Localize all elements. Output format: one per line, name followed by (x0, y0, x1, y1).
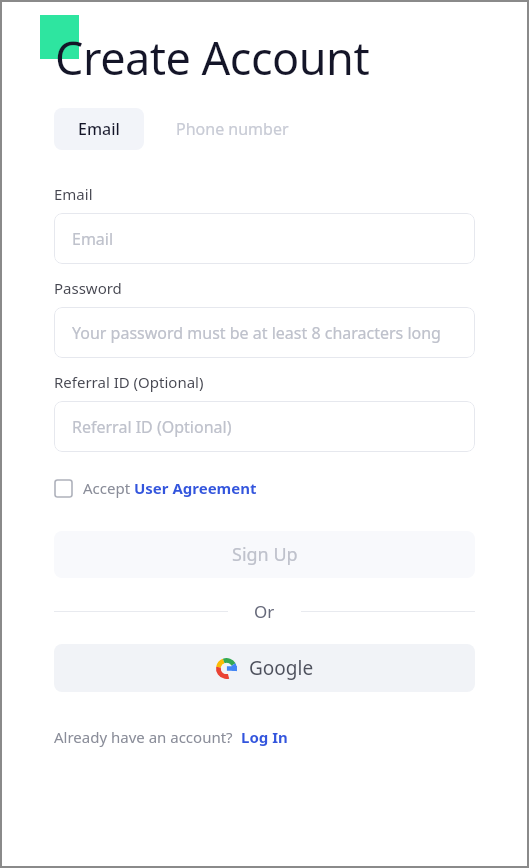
staticText: Referral ID (Optional) (54, 372, 204, 392)
button[interactable]: Log In (233, 724, 296, 750)
staticText: Google (249, 655, 314, 681)
staticText: Password (54, 278, 122, 298)
staticText: Accept (83, 478, 134, 498)
staticText: Your password must be at least 8 charact… (72, 322, 441, 344)
other: Google (216, 658, 237, 679)
staticText: Referral ID (Optional) (72, 416, 232, 438)
button[interactable]: Email (54, 213, 475, 264)
staticText: Already have an account? (54, 727, 233, 747)
staticText: Create Account (55, 27, 370, 88)
button[interactable]: Referral ID (Optional) (54, 401, 475, 452)
button[interactable]: Phone number (166, 108, 299, 150)
staticText: Sign Up (232, 542, 298, 567)
staticText: Log In (241, 727, 288, 747)
button[interactable]: Email (54, 108, 144, 150)
staticText: Email (54, 184, 93, 204)
staticText: Phone number (176, 118, 289, 140)
button[interactable]: Sign Up (54, 531, 475, 578)
button[interactable]: Your password must be at least 8 charact… (54, 307, 475, 358)
staticText: Or (254, 600, 275, 623)
staticText: User Agreement (134, 478, 257, 498)
button[interactable]: Google (54, 644, 475, 692)
button[interactable]: Accept (54, 474, 258, 502)
staticText: Email (72, 228, 114, 250)
staticText: Email (78, 118, 120, 140)
